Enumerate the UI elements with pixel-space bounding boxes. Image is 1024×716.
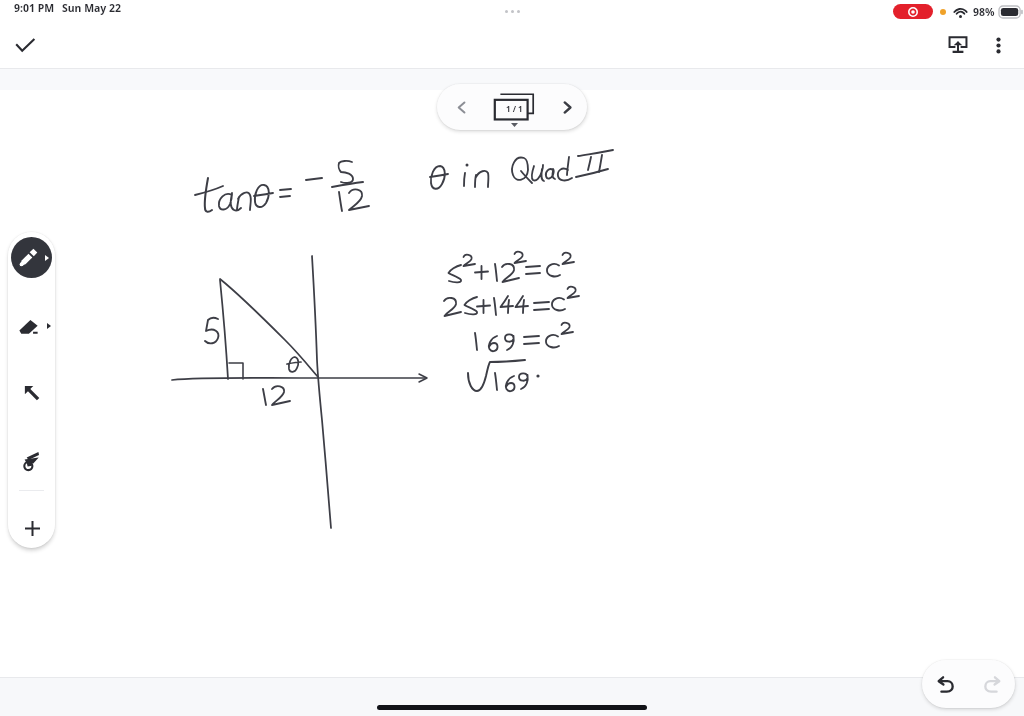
button[interactable]: Laser pointer	[11, 440, 52, 481]
staticText: 1 / 1	[506, 103, 523, 114]
button[interactable]: Export	[940, 27, 976, 63]
button[interactable]: Page 1 of 1	[483, 84, 541, 130]
staticText: 9:01 PM	[14, 1, 55, 15]
button[interactable]: Previous page	[437, 84, 477, 130]
staticText: Sun May 22	[62, 1, 122, 15]
button[interactable]: More options	[982, 29, 1014, 61]
button[interactable]: Redo	[970, 663, 1012, 705]
button[interactable]: Select	[11, 372, 52, 413]
other: Page navigation	[437, 84, 587, 130]
button[interactable]: Eraser	[11, 305, 52, 346]
button[interactable]: Pen	[11, 237, 52, 278]
button[interactable]: Done	[9, 29, 41, 61]
button[interactable]: Next page	[547, 84, 587, 130]
button[interactable]: Add tool	[13, 509, 51, 547]
button[interactable]: Undo	[925, 663, 967, 705]
staticText: 98%	[973, 5, 995, 19]
